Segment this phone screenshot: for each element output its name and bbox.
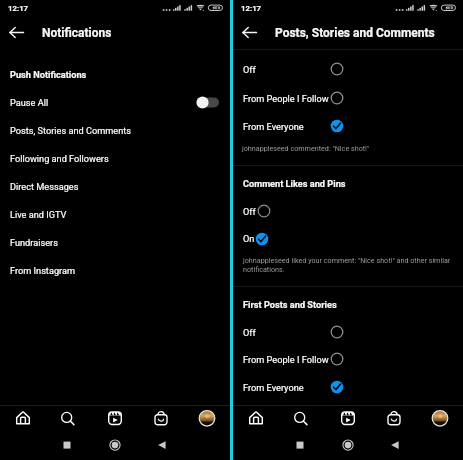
staticText: Live and IGTV (10, 209, 67, 220)
button[interactable] (233, 197, 463, 225)
button[interactable]: Home (335, 433, 361, 459)
button[interactable]: Shop (379, 406, 409, 430)
button[interactable]: Back (149, 433, 175, 459)
button[interactable] (0, 256, 230, 284)
staticText: Fundraisers (10, 237, 58, 248)
staticText: From Everyone (243, 121, 304, 132)
button[interactable] (0, 172, 230, 200)
button[interactable] (0, 144, 230, 172)
staticText: Pause All (10, 97, 49, 108)
button[interactable] (233, 112, 463, 140)
button[interactable]: Recents (287, 433, 313, 459)
staticText: Push Notifications (10, 69, 87, 80)
button[interactable]: Back (4, 20, 29, 45)
button[interactable] (233, 55, 463, 83)
button[interactable]: Shop (146, 406, 176, 430)
staticText: Direct Messages (10, 181, 79, 192)
button[interactable] (0, 116, 230, 144)
staticText: Comment Likes and Pins (243, 178, 346, 189)
staticText: From People I Follow (243, 354, 329, 365)
button[interactable] (0, 200, 230, 228)
button[interactable]: Search (286, 406, 316, 430)
button[interactable]: Profile (192, 406, 222, 430)
button[interactable]: Profile (425, 406, 455, 430)
staticText: johnappleseed commented: "Nice shot!" (242, 144, 370, 152)
staticText: johnappleseed liked your comment: "Nice … (243, 256, 451, 274)
button[interactable]: Pause All (0, 88, 230, 116)
button[interactable]: Home (241, 406, 271, 430)
staticText: From Everyone (243, 382, 304, 393)
staticText: From People I Follow (243, 93, 329, 104)
staticText: On (243, 233, 255, 244)
staticText: 12:17 (241, 4, 262, 13)
button[interactable]: Home (102, 433, 128, 459)
button[interactable] (233, 318, 463, 346)
button[interactable]: Back (382, 433, 408, 459)
staticText: Notifications (42, 26, 112, 40)
button[interactable]: Reels (100, 406, 130, 430)
staticText: Following and Followers (10, 153, 109, 164)
button[interactable]: Back (237, 20, 262, 45)
staticText: From Instagram (10, 265, 76, 276)
button[interactable] (233, 345, 463, 373)
button[interactable] (233, 373, 463, 401)
staticText: First Posts and Stories (243, 299, 337, 310)
button[interactable]: Search (53, 406, 83, 430)
button[interactable] (233, 225, 463, 253)
button[interactable] (0, 228, 230, 256)
button[interactable] (233, 84, 463, 112)
button[interactable] (0, 60, 230, 88)
button[interactable]: Reels (333, 406, 363, 430)
staticText: 12:17 (8, 4, 29, 13)
button[interactable] (233, 290, 463, 318)
staticText: Posts, Stories and Comments (275, 26, 435, 40)
button[interactable] (233, 169, 463, 197)
staticText: Off (243, 327, 256, 338)
button[interactable]: Recents (54, 433, 80, 459)
staticText: Off (243, 64, 256, 75)
staticText: Posts, Stories and Comments (10, 125, 131, 136)
button[interactable]: Home (8, 406, 38, 430)
staticText: Off (243, 206, 256, 217)
